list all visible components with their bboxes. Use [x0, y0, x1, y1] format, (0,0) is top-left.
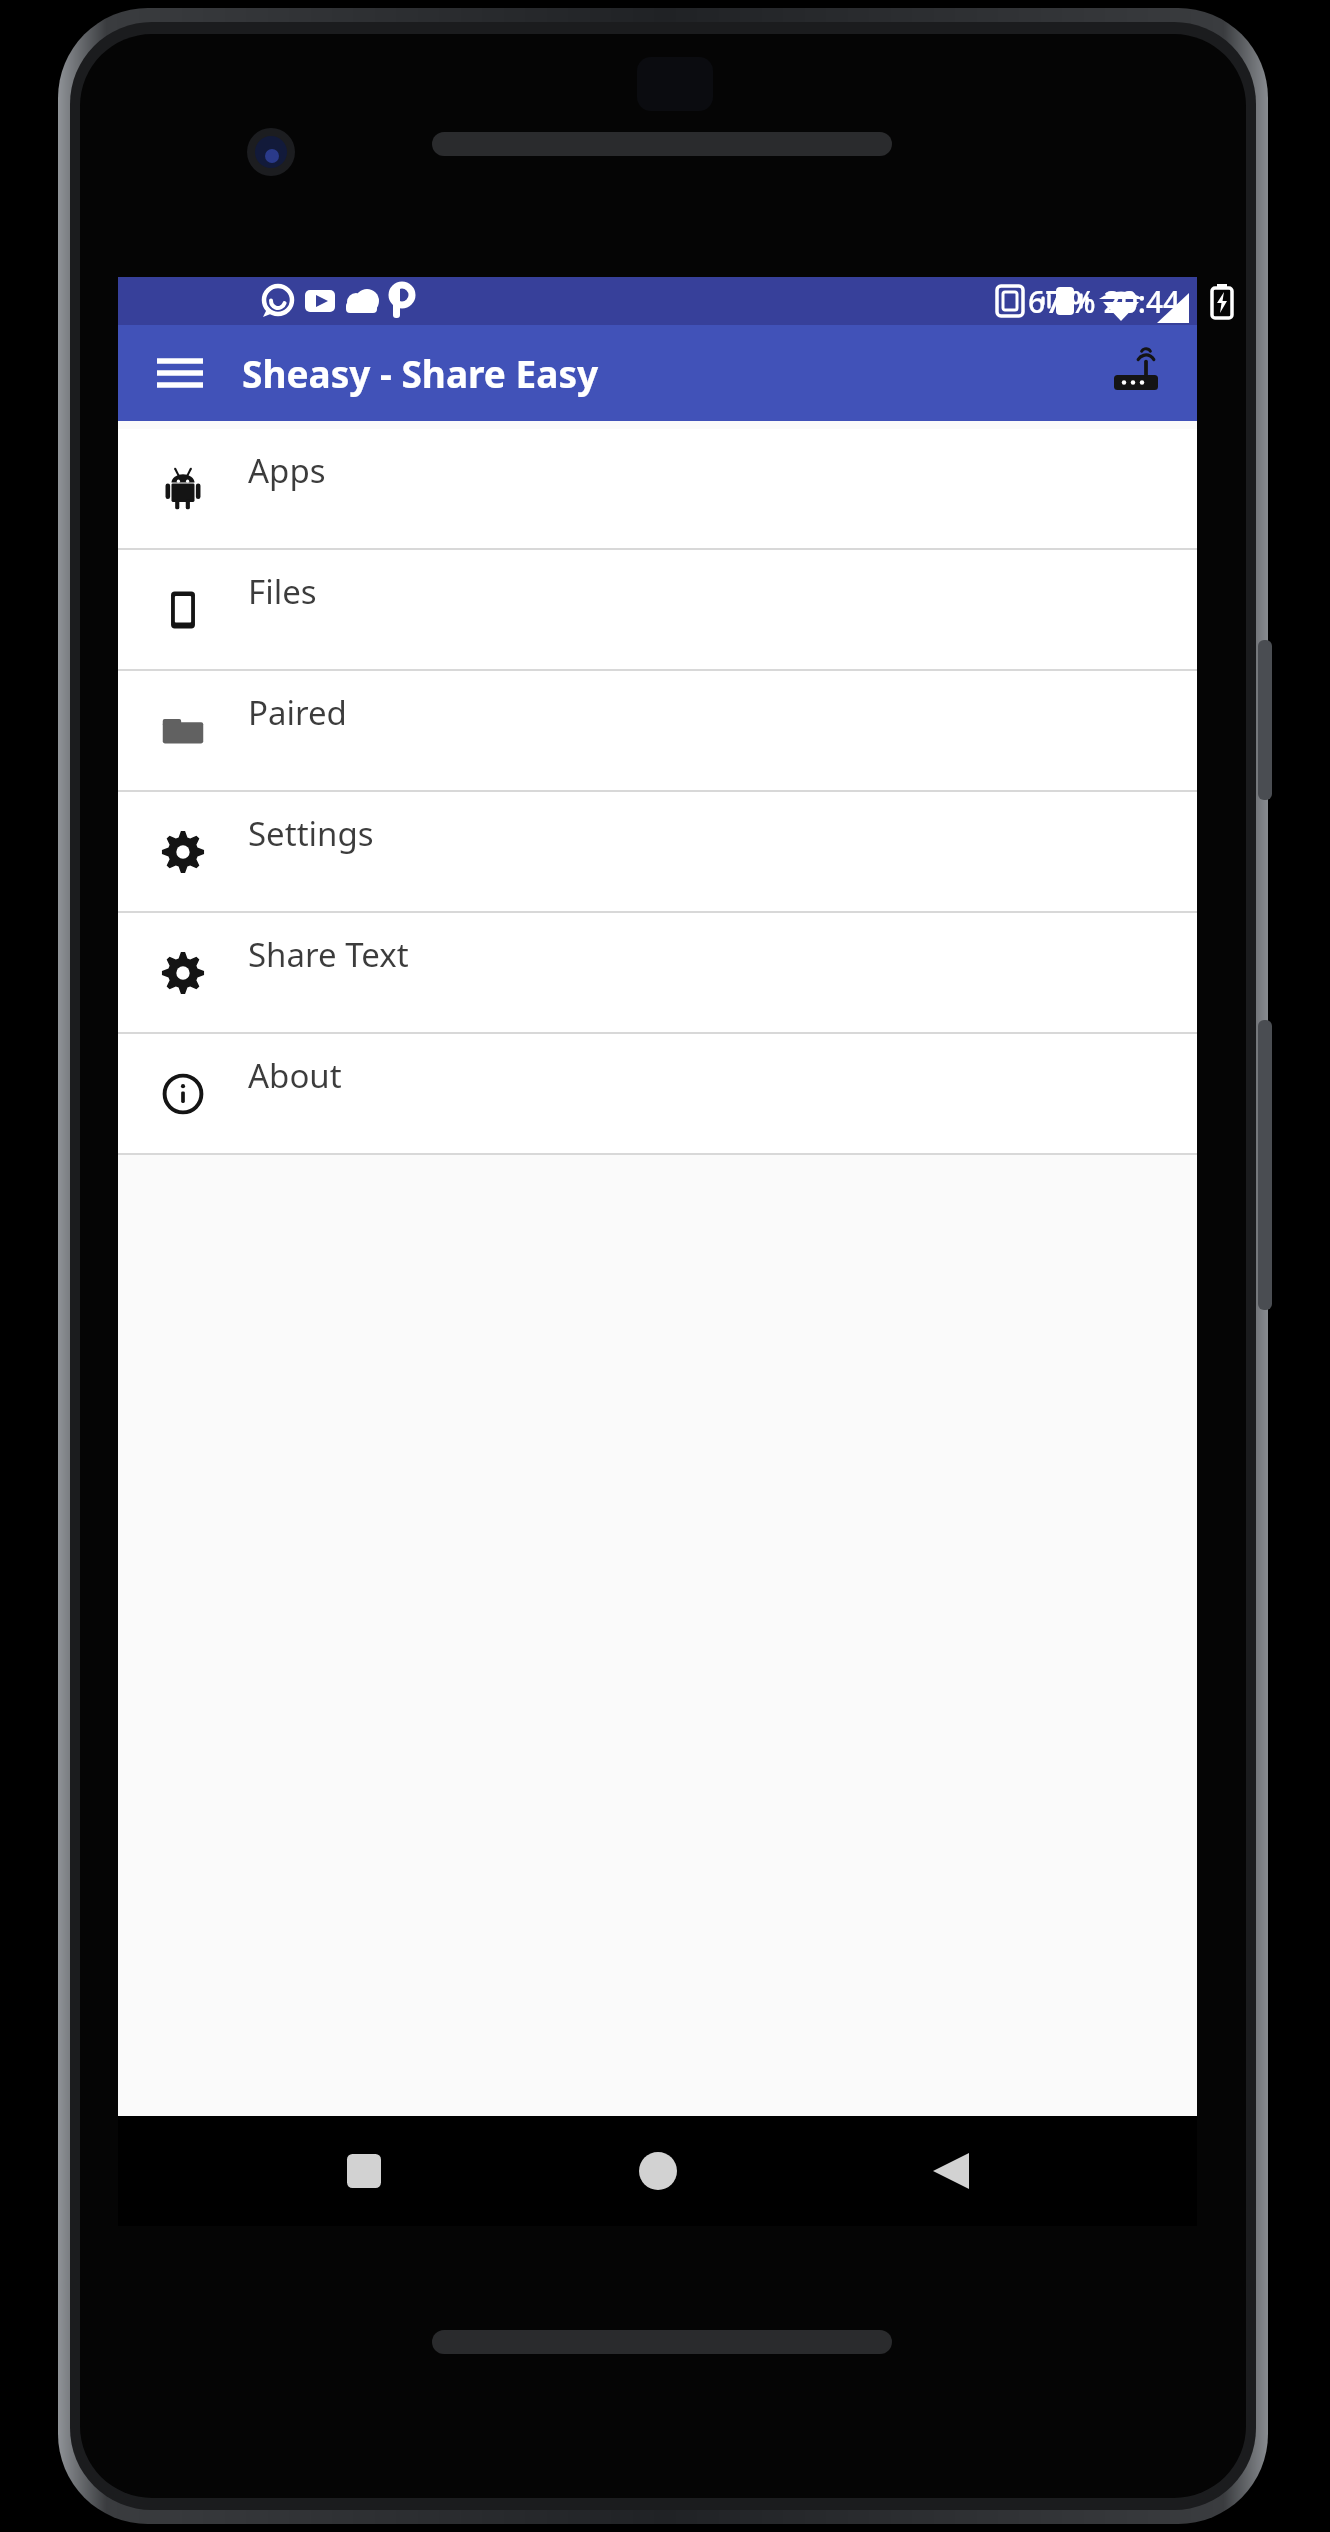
- button[interactable]: Open navigation drawer: [144, 337, 216, 409]
- button[interactable]: Recent apps: [316, 2123, 412, 2219]
- staticText: Share Text: [248, 932, 409, 977]
- button[interactable]: Server / Router: [1097, 334, 1175, 412]
- button[interactable]: Apps: [118, 429, 1197, 548]
- staticText: Paired: [248, 690, 347, 735]
- button[interactable]: Settings: [118, 792, 1197, 911]
- staticText: Settings: [248, 811, 374, 856]
- button[interactable]: Files: [118, 550, 1197, 669]
- staticText: 67 % 20:44: [1028, 281, 1181, 322]
- button[interactable]: About: [118, 1034, 1197, 1153]
- button[interactable]: Back: [903, 2123, 999, 2219]
- button[interactable]: Paired: [118, 671, 1197, 790]
- staticText: Apps: [248, 448, 326, 493]
- button[interactable]: Home: [610, 2123, 706, 2219]
- staticText: Sheasy - Share Easy: [242, 348, 599, 398]
- staticText: About: [248, 1053, 342, 1098]
- button[interactable]: Share Text: [118, 913, 1197, 1032]
- staticText: Files: [248, 569, 317, 614]
